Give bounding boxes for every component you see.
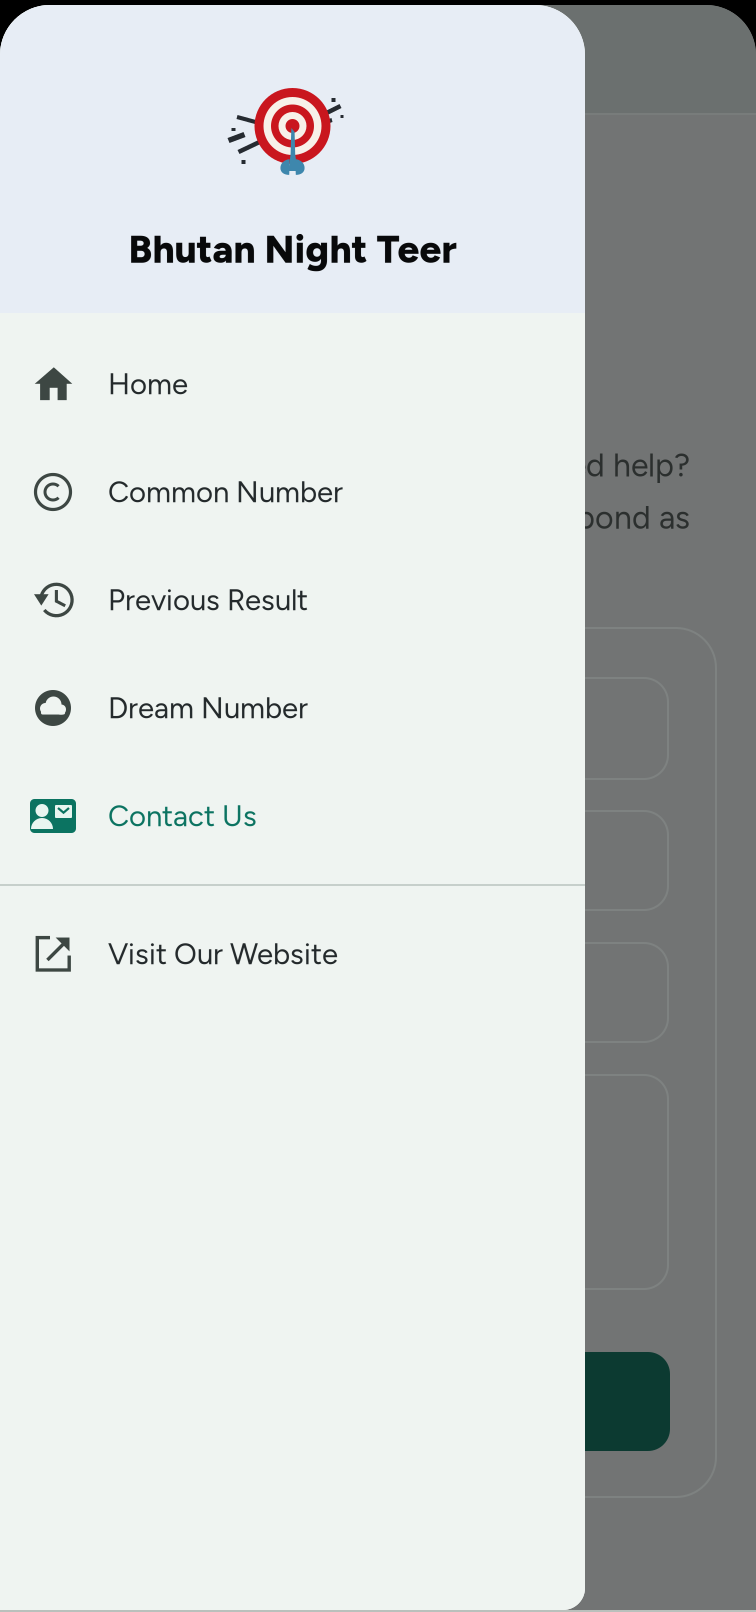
button[interactable]: Contact Us xyxy=(0,762,585,870)
button[interactable]: Common Number xyxy=(0,438,585,546)
staticText: Dream Number xyxy=(108,690,308,726)
staticText: Bhutan Night Teer xyxy=(128,226,456,272)
button[interactable]: Visit Our Website xyxy=(0,900,585,1008)
staticText: you need help? xyxy=(473,446,690,484)
button[interactable]: Dream Number xyxy=(0,654,585,762)
staticText: Common Number xyxy=(108,474,343,510)
button[interactable]: Home xyxy=(0,330,585,438)
staticText: we respond as xyxy=(483,498,690,537)
staticText: Contact Us xyxy=(108,798,257,834)
staticText: Home xyxy=(108,366,188,402)
staticText: Previous Result xyxy=(108,582,308,618)
button[interactable]: Previous Result xyxy=(0,546,585,654)
staticText: Visit Our Website xyxy=(108,936,338,972)
